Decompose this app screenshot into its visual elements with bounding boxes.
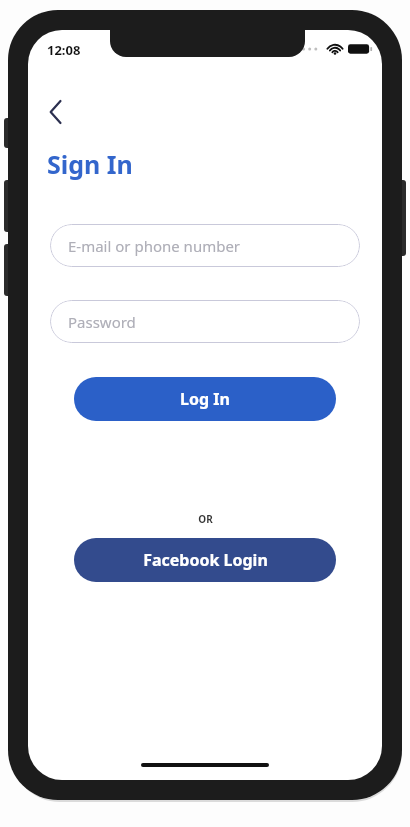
staticText: Sign In (47, 147, 133, 181)
staticText: 12:08 (47, 41, 81, 59)
button[interactable]: E-mail or phone number (50, 224, 360, 267)
staticText: Log In (180, 388, 230, 410)
button[interactable]: Facebook Login (74, 538, 336, 582)
button[interactable]: Log In (74, 377, 336, 421)
staticText: E-mail or phone number (68, 236, 241, 256)
button[interactable]: Back (34, 90, 78, 134)
staticText: Facebook Login (143, 549, 268, 571)
staticText: OR (198, 512, 213, 526)
button[interactable]: Password (50, 300, 360, 343)
staticText: Password (68, 312, 136, 332)
